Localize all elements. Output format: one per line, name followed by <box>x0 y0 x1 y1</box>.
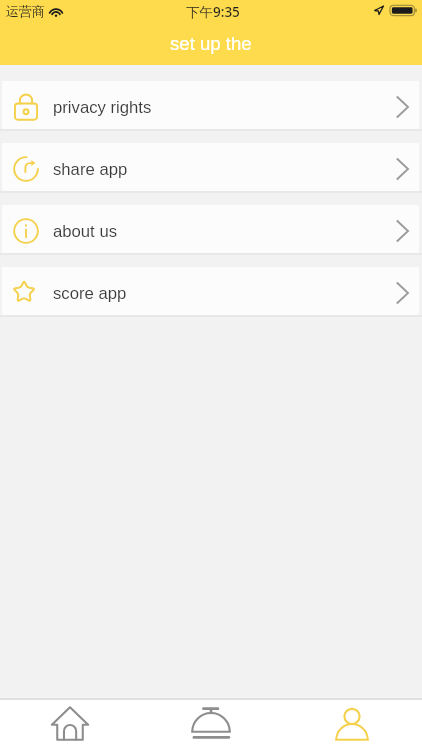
button[interactable]: Home <box>0 700 140 750</box>
staticText: 运营商 <box>6 3 45 19</box>
staticText: score app <box>53 284 127 303</box>
button[interactable]: Profile <box>281 700 422 750</box>
staticText: about us <box>53 222 118 241</box>
button[interactable]: share app <box>2 143 419 191</box>
staticText: privacy rights <box>53 98 152 117</box>
staticText: share app <box>53 160 128 179</box>
staticText: set up the <box>170 33 252 54</box>
staticText: 下午9:35 <box>186 3 240 21</box>
button[interactable]: Service <box>140 700 281 750</box>
button[interactable]: about us <box>2 205 419 253</box>
button[interactable]: score app <box>2 267 419 315</box>
button[interactable]: privacy rights <box>2 81 419 129</box>
